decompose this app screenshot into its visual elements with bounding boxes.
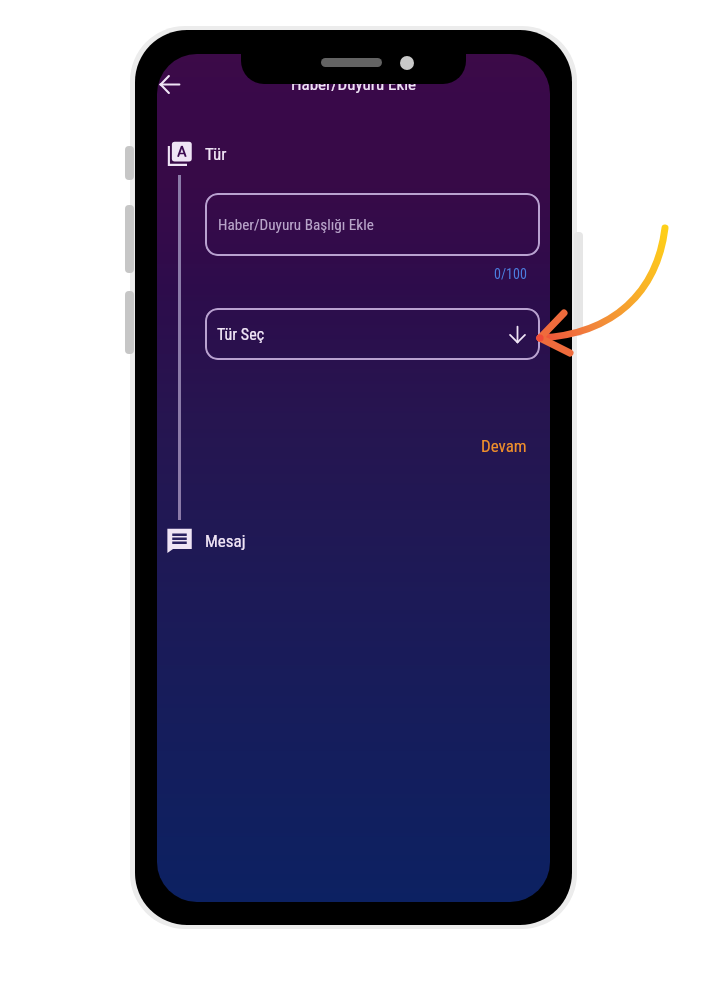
staticText: Devam — [481, 436, 527, 456]
button[interactable]: Haber/Duyuru Başlığı Ekle — [205, 193, 540, 256]
staticText: Mesaj — [205, 531, 246, 551]
button[interactable]: Tür Seç — [205, 308, 540, 360]
staticText: Tür — [205, 144, 227, 164]
staticText: 0/100 — [494, 266, 527, 282]
staticText: Haber/Duyuru Başlığı Ekle — [218, 216, 374, 234]
button[interactable]: Mesaj — [167, 528, 246, 553]
button[interactable]: Back — [157, 62, 191, 106]
button[interactable]: Devam — [471, 428, 537, 464]
other: Open type list — [509, 326, 526, 343]
staticText: Haber/Duyuru Ekle — [157, 74, 550, 94]
button[interactable]: Tür — [167, 141, 227, 166]
staticText: Tür Seç — [217, 325, 265, 344]
